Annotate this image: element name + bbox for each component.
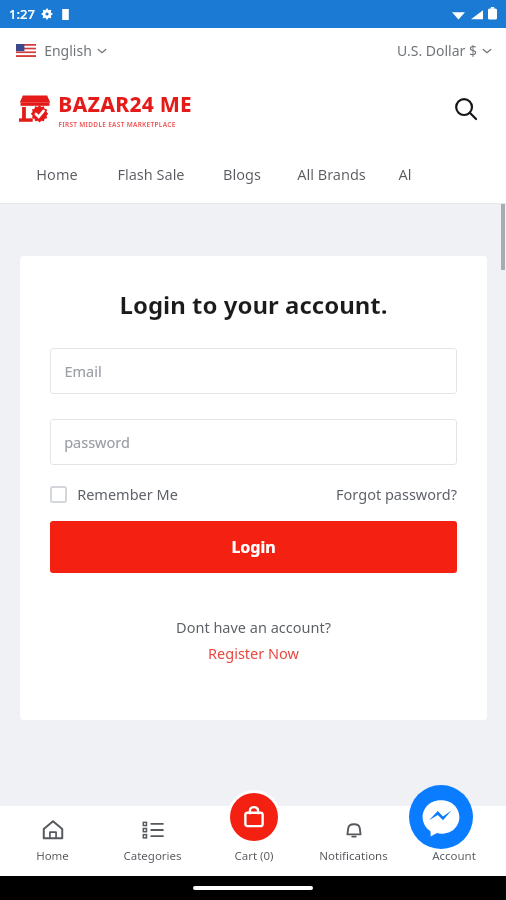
staticText: Home: [36, 164, 78, 184]
button[interactable]: All Brands: [297, 156, 366, 192]
button[interactable]: Categories: [105, 813, 200, 870]
staticText: FIRST MIDDLE EAST MARKETPLACE: [58, 120, 176, 129]
staticText: All Brands: [297, 164, 366, 184]
button[interactable]: Al: [398, 156, 412, 192]
button[interactable]: password: [50, 419, 457, 465]
staticText: Cart (0): [234, 848, 274, 864]
staticText: password: [64, 432, 130, 452]
staticText: Flash Sale: [117, 164, 185, 184]
button[interactable]: Home: [5, 813, 100, 870]
staticText: Account: [432, 848, 476, 864]
button[interactable]: Cart (0): [206, 813, 301, 870]
staticText: Login: [231, 536, 276, 558]
button[interactable]: U.S. Dollar $: [397, 41, 492, 60]
staticText: Dont have an account?: [176, 617, 331, 637]
button[interactable]: Home: [36, 156, 78, 192]
staticText: Email: [64, 361, 102, 381]
staticText: 1:27: [9, 5, 35, 23]
button[interactable]: Messenger chat: [409, 785, 473, 849]
staticText: Home: [36, 848, 69, 864]
button[interactable]: Search: [448, 91, 484, 127]
button[interactable]: Register Now: [208, 643, 299, 663]
staticText: Remember Me: [77, 484, 178, 504]
button[interactable]: BAZAR24 ME: [16, 90, 192, 129]
button[interactable]: Account: [406, 813, 501, 870]
staticText: Al: [398, 164, 412, 184]
staticText: U.S. Dollar $: [397, 41, 477, 60]
staticText: Login to your account.: [119, 288, 388, 321]
button[interactable]: Email: [50, 348, 457, 394]
button[interactable]: English: [16, 41, 107, 60]
button[interactable]: Remember Me: [50, 484, 178, 504]
staticText: Register Now: [208, 643, 299, 663]
button[interactable]: Flash Sale: [117, 156, 185, 192]
button[interactable]: Login: [50, 521, 457, 573]
staticText: English: [44, 41, 92, 60]
staticText: Blogs: [223, 164, 261, 184]
button[interactable]: Cart: [230, 793, 278, 841]
button[interactable]: Notifications: [306, 813, 401, 870]
button[interactable]: Forgot password?: [336, 484, 457, 504]
staticText: Notifications: [319, 848, 388, 864]
staticText: BAZAR24 ME: [58, 90, 192, 119]
button[interactable]: Blogs: [223, 156, 261, 192]
staticText: Categories: [123, 848, 182, 864]
staticText: Forgot password?: [336, 484, 457, 504]
